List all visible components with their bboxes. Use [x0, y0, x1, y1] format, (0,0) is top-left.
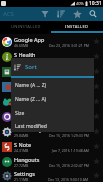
staticText: Google App: [14, 36, 45, 43]
button[interactable]: Favorite: [90, 109, 103, 124]
staticText: Viber: [14, 111, 28, 118]
staticText: Jan 7, 2016 1:19:48 AM: [52, 148, 89, 153]
staticText: Sort: [25, 63, 37, 71]
button[interactable]: Messenger: [0, 79, 103, 94]
button[interactable]: Search: [85, 7, 101, 21]
staticText: ACS: [3, 10, 14, 18]
button[interactable]: Favorite: [90, 139, 103, 154]
button[interactable]: Viber: [0, 109, 103, 124]
staticText: Name (A ... Z): [15, 82, 47, 89]
staticText: 46.60MB: [14, 43, 29, 48]
staticText: Dec 15, 2016 1:29:33 PM: [49, 133, 89, 138]
button[interactable]: Favorite: [90, 49, 103, 64]
button[interactable]: INSTALLED: [51, 21, 103, 31]
staticText: Dec 13, 2016 9:00:10 AM: [48, 177, 89, 182]
staticText: Hangouts: [14, 156, 40, 163]
staticText: Dec 15, 2016 2:32:47 PM: [49, 163, 89, 168]
staticText: Play Store: [14, 66, 40, 73]
button[interactable]: Filter: [37, 7, 53, 21]
button[interactable]: Name (Z ... A): [11, 92, 94, 106]
button[interactable]: Favorite: [90, 79, 103, 94]
button[interactable]: S Health: [0, 49, 103, 64]
staticText: 40%: [76, 1, 84, 6]
button[interactable]: Android System WebView: [0, 124, 103, 139]
button[interactable]: Hangouts: [0, 154, 103, 169]
button[interactable]: Sort: [53, 7, 69, 21]
staticText: Settings: [14, 170, 35, 177]
staticText: Last modified: [15, 123, 47, 130]
staticText: Dec 23, 2016 3:31:21 PM: [49, 43, 89, 48]
button[interactable]: Favorite: [90, 64, 103, 79]
button[interactable]: Size: [11, 106, 94, 120]
staticText: Dec 21, 2016 9:02:41 AM: [48, 73, 89, 78]
button[interactable]: Favorite: [90, 124, 103, 139]
button[interactable]: Sort: [11, 58, 94, 76]
staticText: 21.11MB: [14, 177, 29, 182]
staticText: 22.11MB: [14, 73, 29, 78]
button[interactable]: UNINSTALLED: [0, 21, 51, 31]
button[interactable]: S Note: [0, 139, 103, 154]
staticText: S Note: [14, 141, 32, 148]
button[interactable]: Skype: [0, 94, 103, 109]
button[interactable]: Favorite: [90, 169, 103, 182]
staticText: 27.72MB: [14, 163, 29, 168]
button[interactable]: Favorite: [90, 94, 103, 109]
staticText: Skype: [14, 96, 30, 103]
staticText: INSTALLED: [65, 24, 89, 29]
staticText: 10:31: [89, 0, 102, 7]
button[interactable]: Settings: [0, 169, 103, 182]
staticText: S Health: [14, 51, 36, 58]
staticText: Messenger: [14, 81, 43, 88]
button[interactable]: Last modified: [11, 120, 94, 132]
button[interactable]: Favorites: [69, 7, 85, 21]
button[interactable]: Favorite: [90, 154, 103, 169]
button[interactable]: Play Store: [0, 64, 103, 79]
staticText: Name (Z ... A): [15, 96, 47, 103]
staticText: 29.84MB: [14, 133, 29, 138]
staticText: 24.31MB: [14, 148, 29, 153]
staticText: Size: [15, 110, 25, 117]
staticText: Android System WebView: [14, 126, 80, 133]
staticText: UNINSTALLED: [11, 24, 41, 29]
button[interactable]: Google App: [0, 34, 103, 49]
button[interactable]: Name (A ... Z): [11, 78, 94, 92]
button[interactable]: Favorite: [90, 34, 103, 49]
